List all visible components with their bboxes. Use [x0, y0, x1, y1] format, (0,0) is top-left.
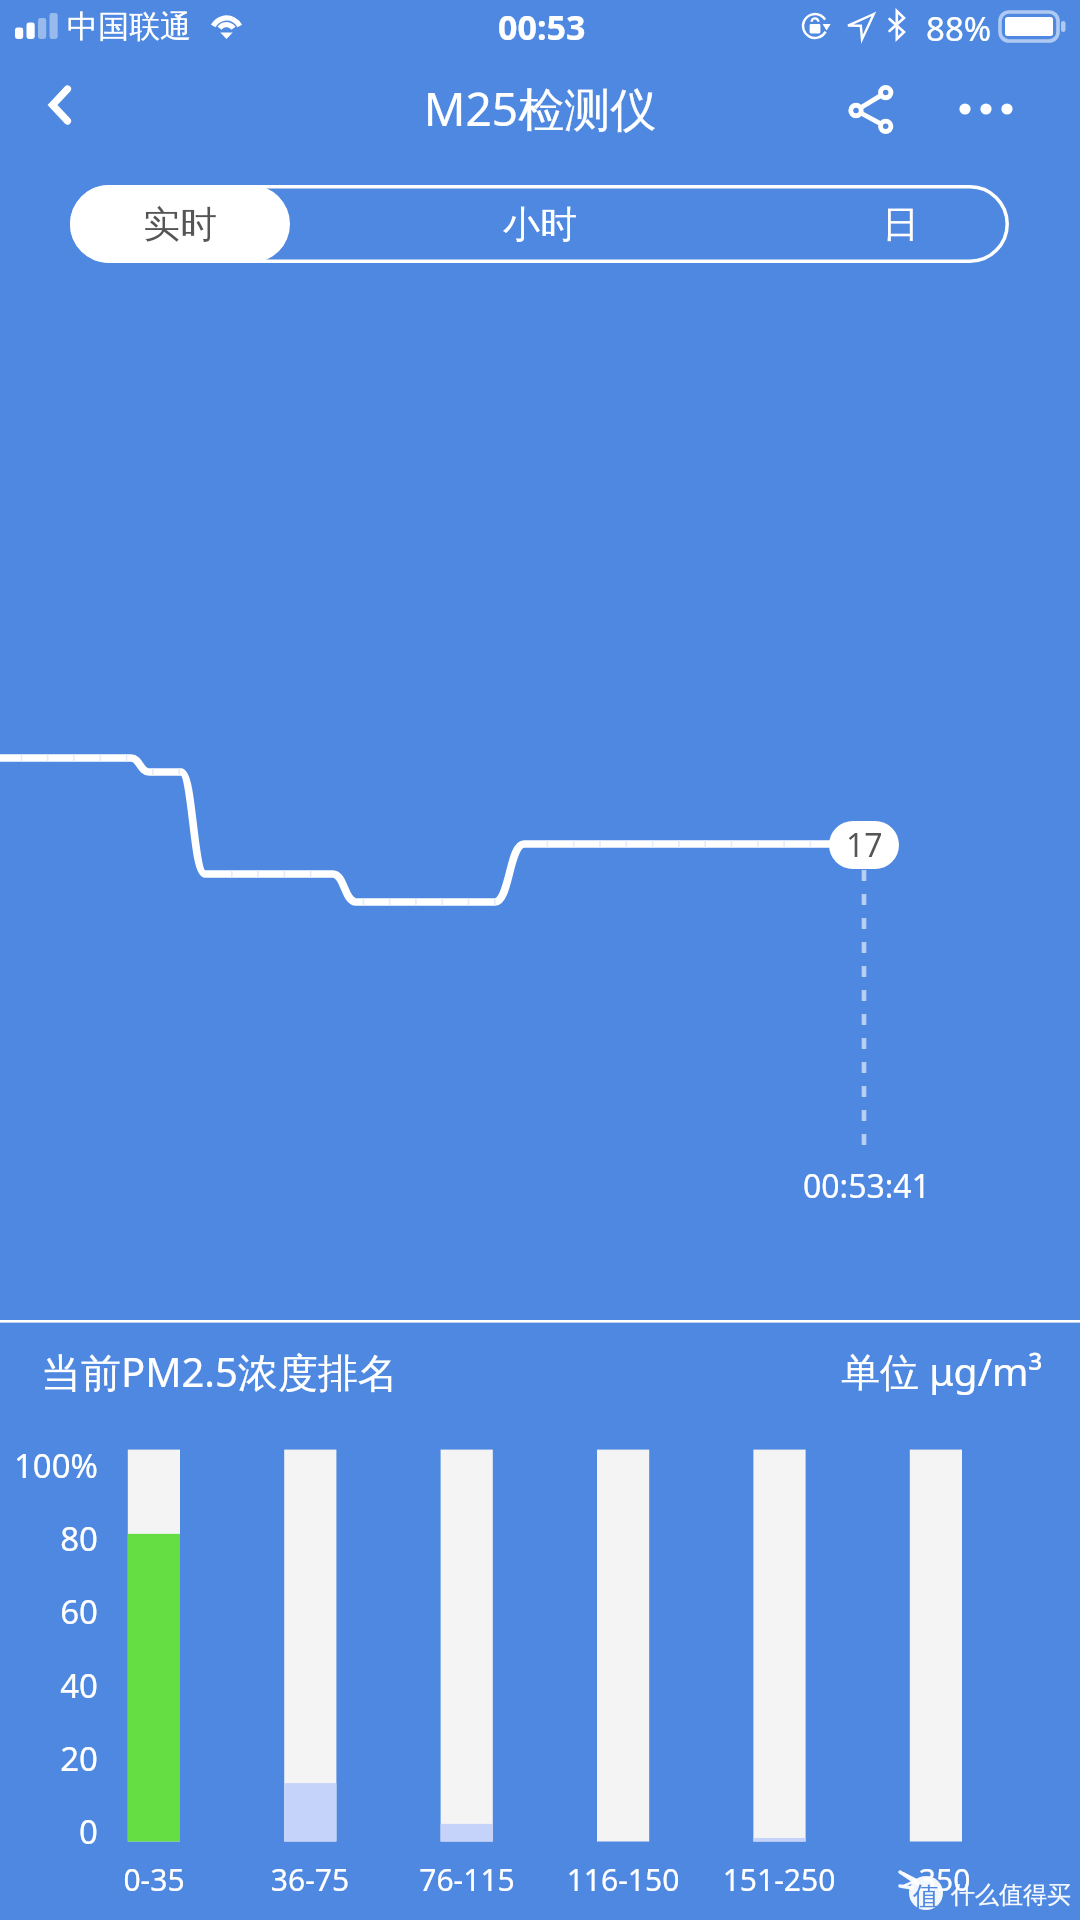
staticText: 日	[882, 201, 919, 248]
staticText: 116-150	[543, 1859, 703, 1900]
staticText: 36-75	[230, 1859, 390, 1900]
staticText: 当前PM2.5浓度排名	[41, 1344, 398, 1399]
staticText: 中国联通	[67, 7, 191, 46]
staticText: 40	[0, 1663, 98, 1708]
button[interactable]: 日	[720, 185, 1080, 263]
button[interactable]: 实时	[70, 185, 290, 263]
button[interactable]: Back	[24, 72, 100, 148]
staticText: >350	[856, 1859, 1016, 1900]
staticText: 实时	[143, 201, 217, 248]
staticText: 88%	[926, 6, 992, 51]
staticText: 80	[0, 1516, 98, 1561]
button[interactable]: More options	[940, 78, 1030, 142]
staticText: 76-115	[387, 1859, 547, 1900]
staticText: 值	[913, 1880, 939, 1913]
staticText: M25检测仪	[0, 77, 1080, 140]
staticText: 什么值得买	[951, 1880, 1071, 1910]
staticText: 0	[0, 1809, 98, 1854]
staticText: 17	[846, 823, 883, 867]
staticText: 小时	[503, 201, 577, 248]
staticText: 20	[0, 1736, 98, 1781]
staticText: 151-250	[699, 1859, 859, 1900]
staticText: 100%	[0, 1443, 98, 1488]
staticText: 60	[0, 1589, 98, 1634]
staticText: 00:53:41	[803, 1164, 930, 1208]
button[interactable]: 小时	[360, 185, 720, 263]
staticText: 单位 μg/m³	[841, 1344, 1043, 1397]
staticText: 0-35	[74, 1859, 234, 1900]
button[interactable]: Share	[840, 86, 904, 142]
staticText: 00:53	[498, 4, 586, 50]
